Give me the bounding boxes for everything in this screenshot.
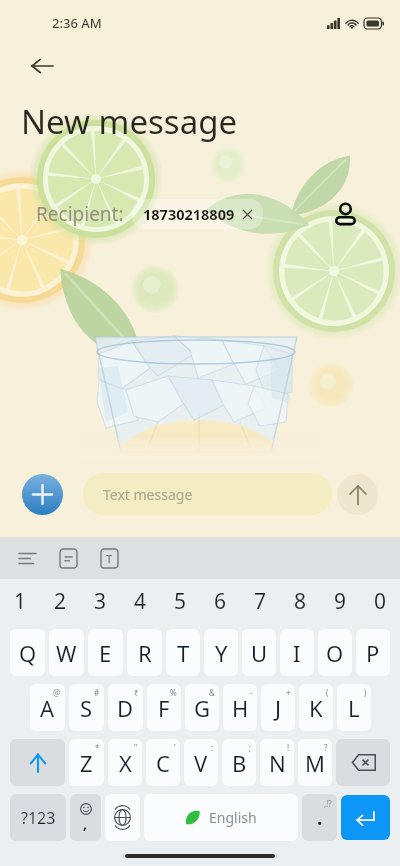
staticText: 9 (334, 587, 347, 616)
button[interactable]: E (88, 629, 123, 676)
button[interactable]: 7 (240, 579, 280, 624)
staticText: X (119, 748, 132, 778)
button[interactable]: Back (24, 48, 60, 84)
button[interactable]: 6 (200, 579, 240, 624)
staticText: % (170, 687, 177, 698)
button[interactable]: T (166, 629, 200, 676)
staticText: * (95, 742, 100, 753)
button[interactable]: Y (204, 629, 238, 676)
staticText: English (209, 808, 257, 827)
button[interactable]: 4 (120, 579, 160, 624)
button[interactable]: C (146, 739, 180, 786)
button[interactable]: V (184, 739, 218, 786)
button[interactable]: Change keyboard (105, 794, 140, 841)
button[interactable]: L (337, 684, 371, 731)
button[interactable]: F (147, 684, 181, 731)
staticText: ' (174, 742, 176, 753)
button[interactable]: J (261, 684, 295, 731)
staticText: H (232, 693, 249, 723)
button[interactable]: Choose contact (326, 195, 364, 233)
staticText: ; (249, 742, 252, 753)
staticText: 0 (374, 587, 387, 616)
button[interactable]: N (260, 739, 294, 786)
staticText: 2 (54, 587, 67, 616)
button[interactable]: Clipboard (52, 542, 85, 575)
staticText: New message (21, 99, 238, 144)
button[interactable]: P (356, 629, 390, 676)
button[interactable]: S (69, 684, 104, 731)
button[interactable]: D (108, 684, 143, 731)
staticText: , (83, 813, 88, 833)
staticText: @ (53, 687, 61, 698)
button[interactable]: I (280, 629, 314, 676)
staticText: 4 (134, 587, 147, 616)
button[interactable]: Z (69, 739, 104, 786)
staticText: J (275, 693, 282, 723)
staticText: : (211, 742, 214, 753)
button[interactable]: K (299, 684, 333, 731)
staticText: 2:36 AM (52, 14, 102, 32)
button[interactable]: Enter (341, 795, 390, 840)
staticText: ?123 (21, 807, 56, 829)
button[interactable]: Shift (10, 739, 65, 786)
staticText: ( (326, 687, 329, 698)
staticText: B (232, 748, 247, 778)
staticText: 3 (94, 587, 107, 616)
button[interactable]: 2 (40, 579, 80, 624)
button[interactable]: H (223, 684, 257, 731)
staticText: ₹ (134, 687, 139, 698)
staticText: - (250, 687, 253, 698)
staticText: L (348, 693, 360, 723)
staticText: N (269, 748, 286, 778)
button[interactable]: X (108, 739, 142, 786)
staticText: W (56, 638, 77, 668)
staticText: D (117, 693, 134, 723)
staticText: R (138, 638, 152, 668)
button[interactable]: Q (10, 629, 45, 676)
button[interactable]: U (242, 629, 276, 676)
button[interactable]: 8 (280, 579, 320, 624)
button[interactable]: Text formatting (93, 542, 126, 575)
button[interactable]: 3 (80, 579, 120, 624)
button[interactable]: 9 (320, 579, 360, 624)
staticText: T (106, 551, 113, 566)
staticText: M (305, 748, 325, 778)
button[interactable]: 5 (160, 579, 200, 624)
button[interactable]: M (298, 739, 332, 786)
button[interactable]: Send (337, 474, 378, 515)
staticText: P (366, 638, 380, 668)
staticText: S (80, 693, 93, 723)
button[interactable]: G (185, 684, 219, 731)
staticText: 1 (14, 587, 27, 616)
staticText: E (99, 638, 112, 668)
staticText: Text message (103, 485, 193, 504)
staticText: F (158, 693, 170, 723)
staticText: 18730218809 (143, 204, 235, 224)
staticText: A (40, 693, 55, 723)
staticText: + (286, 687, 291, 698)
button[interactable]: . (302, 794, 337, 841)
staticText: 6 (214, 587, 227, 616)
staticText: Z (80, 748, 93, 778)
button[interactable]: 1 (0, 579, 40, 624)
button[interactable]: R (127, 629, 162, 676)
staticText: K (309, 693, 323, 723)
button[interactable]: Emoji (70, 794, 101, 841)
button[interactable]: A (30, 684, 65, 731)
button[interactable]: B (222, 739, 256, 786)
staticText: " (134, 742, 138, 753)
staticText: Recipient: (36, 201, 124, 227)
button[interactable]: Text options (11, 542, 44, 575)
button[interactable]: 0 (360, 579, 400, 624)
staticText: U (251, 638, 268, 668)
button[interactable]: English (144, 794, 298, 841)
button[interactable]: Text message (83, 473, 332, 515)
button[interactable]: W (49, 629, 84, 676)
staticText: 5 (174, 587, 187, 616)
button[interactable]: Recipient: (36, 194, 326, 234)
button[interactable]: O (318, 629, 352, 676)
button[interactable]: Add attachment (22, 474, 63, 515)
button[interactable]: Backspace (336, 739, 390, 786)
button[interactable]: ?123 (10, 794, 66, 841)
staticText: Q (19, 638, 37, 668)
